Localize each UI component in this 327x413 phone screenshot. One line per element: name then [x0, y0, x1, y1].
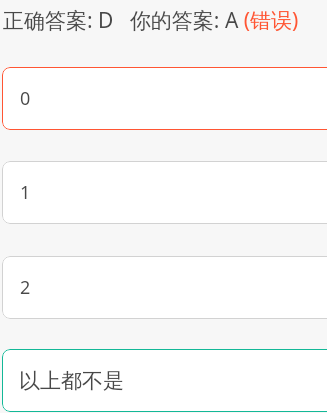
staticText: 2 — [20, 275, 31, 300]
button[interactable]: 1 — [2, 161, 327, 224]
button[interactable]: 以上都不是 — [2, 349, 327, 412]
staticText: 正确答案: D 你的答案: A (错误) — [3, 6, 299, 35]
button[interactable]: 0 — [2, 67, 327, 130]
staticText: 0 — [20, 86, 31, 111]
button[interactable]: 2 — [2, 256, 327, 319]
staticText: 以上都不是 — [19, 368, 124, 394]
staticText: 1 — [20, 180, 31, 205]
